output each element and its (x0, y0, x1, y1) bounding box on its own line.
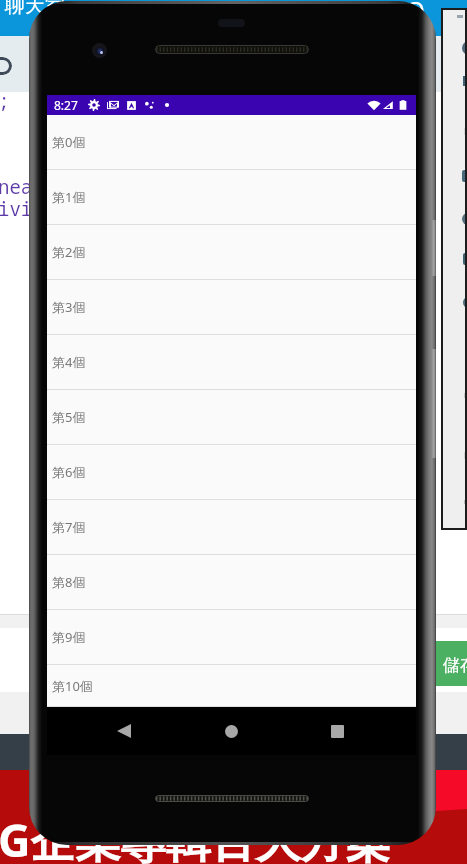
staticText: 第4個 (52, 353, 86, 371)
button[interactable]: 第9個 (47, 610, 416, 665)
staticText: 第5個 (52, 408, 86, 426)
staticText: 儲存資料 (443, 655, 467, 676)
staticText: 8:27 (54, 97, 78, 113)
button[interactable]: 第1個 (47, 170, 416, 225)
staticText: 第3個 (52, 298, 86, 316)
button[interactable]: 第4個 (47, 335, 416, 390)
button[interactable]: 第10個 (47, 665, 416, 707)
button[interactable]: 第2個 (47, 225, 416, 280)
staticText: 聊天室 (5, 0, 65, 18)
button[interactable]: 第6個 (47, 445, 416, 500)
staticText: 第2個 (52, 243, 86, 261)
staticText: Q (406, 0, 425, 26)
staticText: ; (0, 88, 10, 114)
button[interactable]: Recents (313, 707, 362, 755)
staticText: 第7個 (52, 518, 86, 536)
staticText: 第8個 (52, 573, 86, 591)
button[interactable]: Home (207, 707, 256, 755)
button[interactable]: 第3個 (47, 280, 416, 335)
staticText: ivi (0, 196, 33, 222)
button[interactable]: 第8個 (47, 555, 416, 610)
button[interactable]: 儲存資料 (434, 641, 467, 686)
staticText: 第0個 (52, 133, 86, 151)
staticText: nea (0, 174, 33, 200)
staticText: 第6個 (52, 463, 86, 481)
button[interactable]: 第7個 (47, 500, 416, 555)
staticText: 第10個 (52, 677, 93, 695)
staticText: 第1個 (52, 188, 86, 206)
staticText: 第9個 (52, 628, 86, 646)
button[interactable]: 第0個 (47, 115, 416, 170)
button[interactable]: Back (99, 707, 148, 755)
staticText: G企業專輯百大方案 (0, 809, 391, 864)
button[interactable]: 第5個 (47, 390, 416, 445)
